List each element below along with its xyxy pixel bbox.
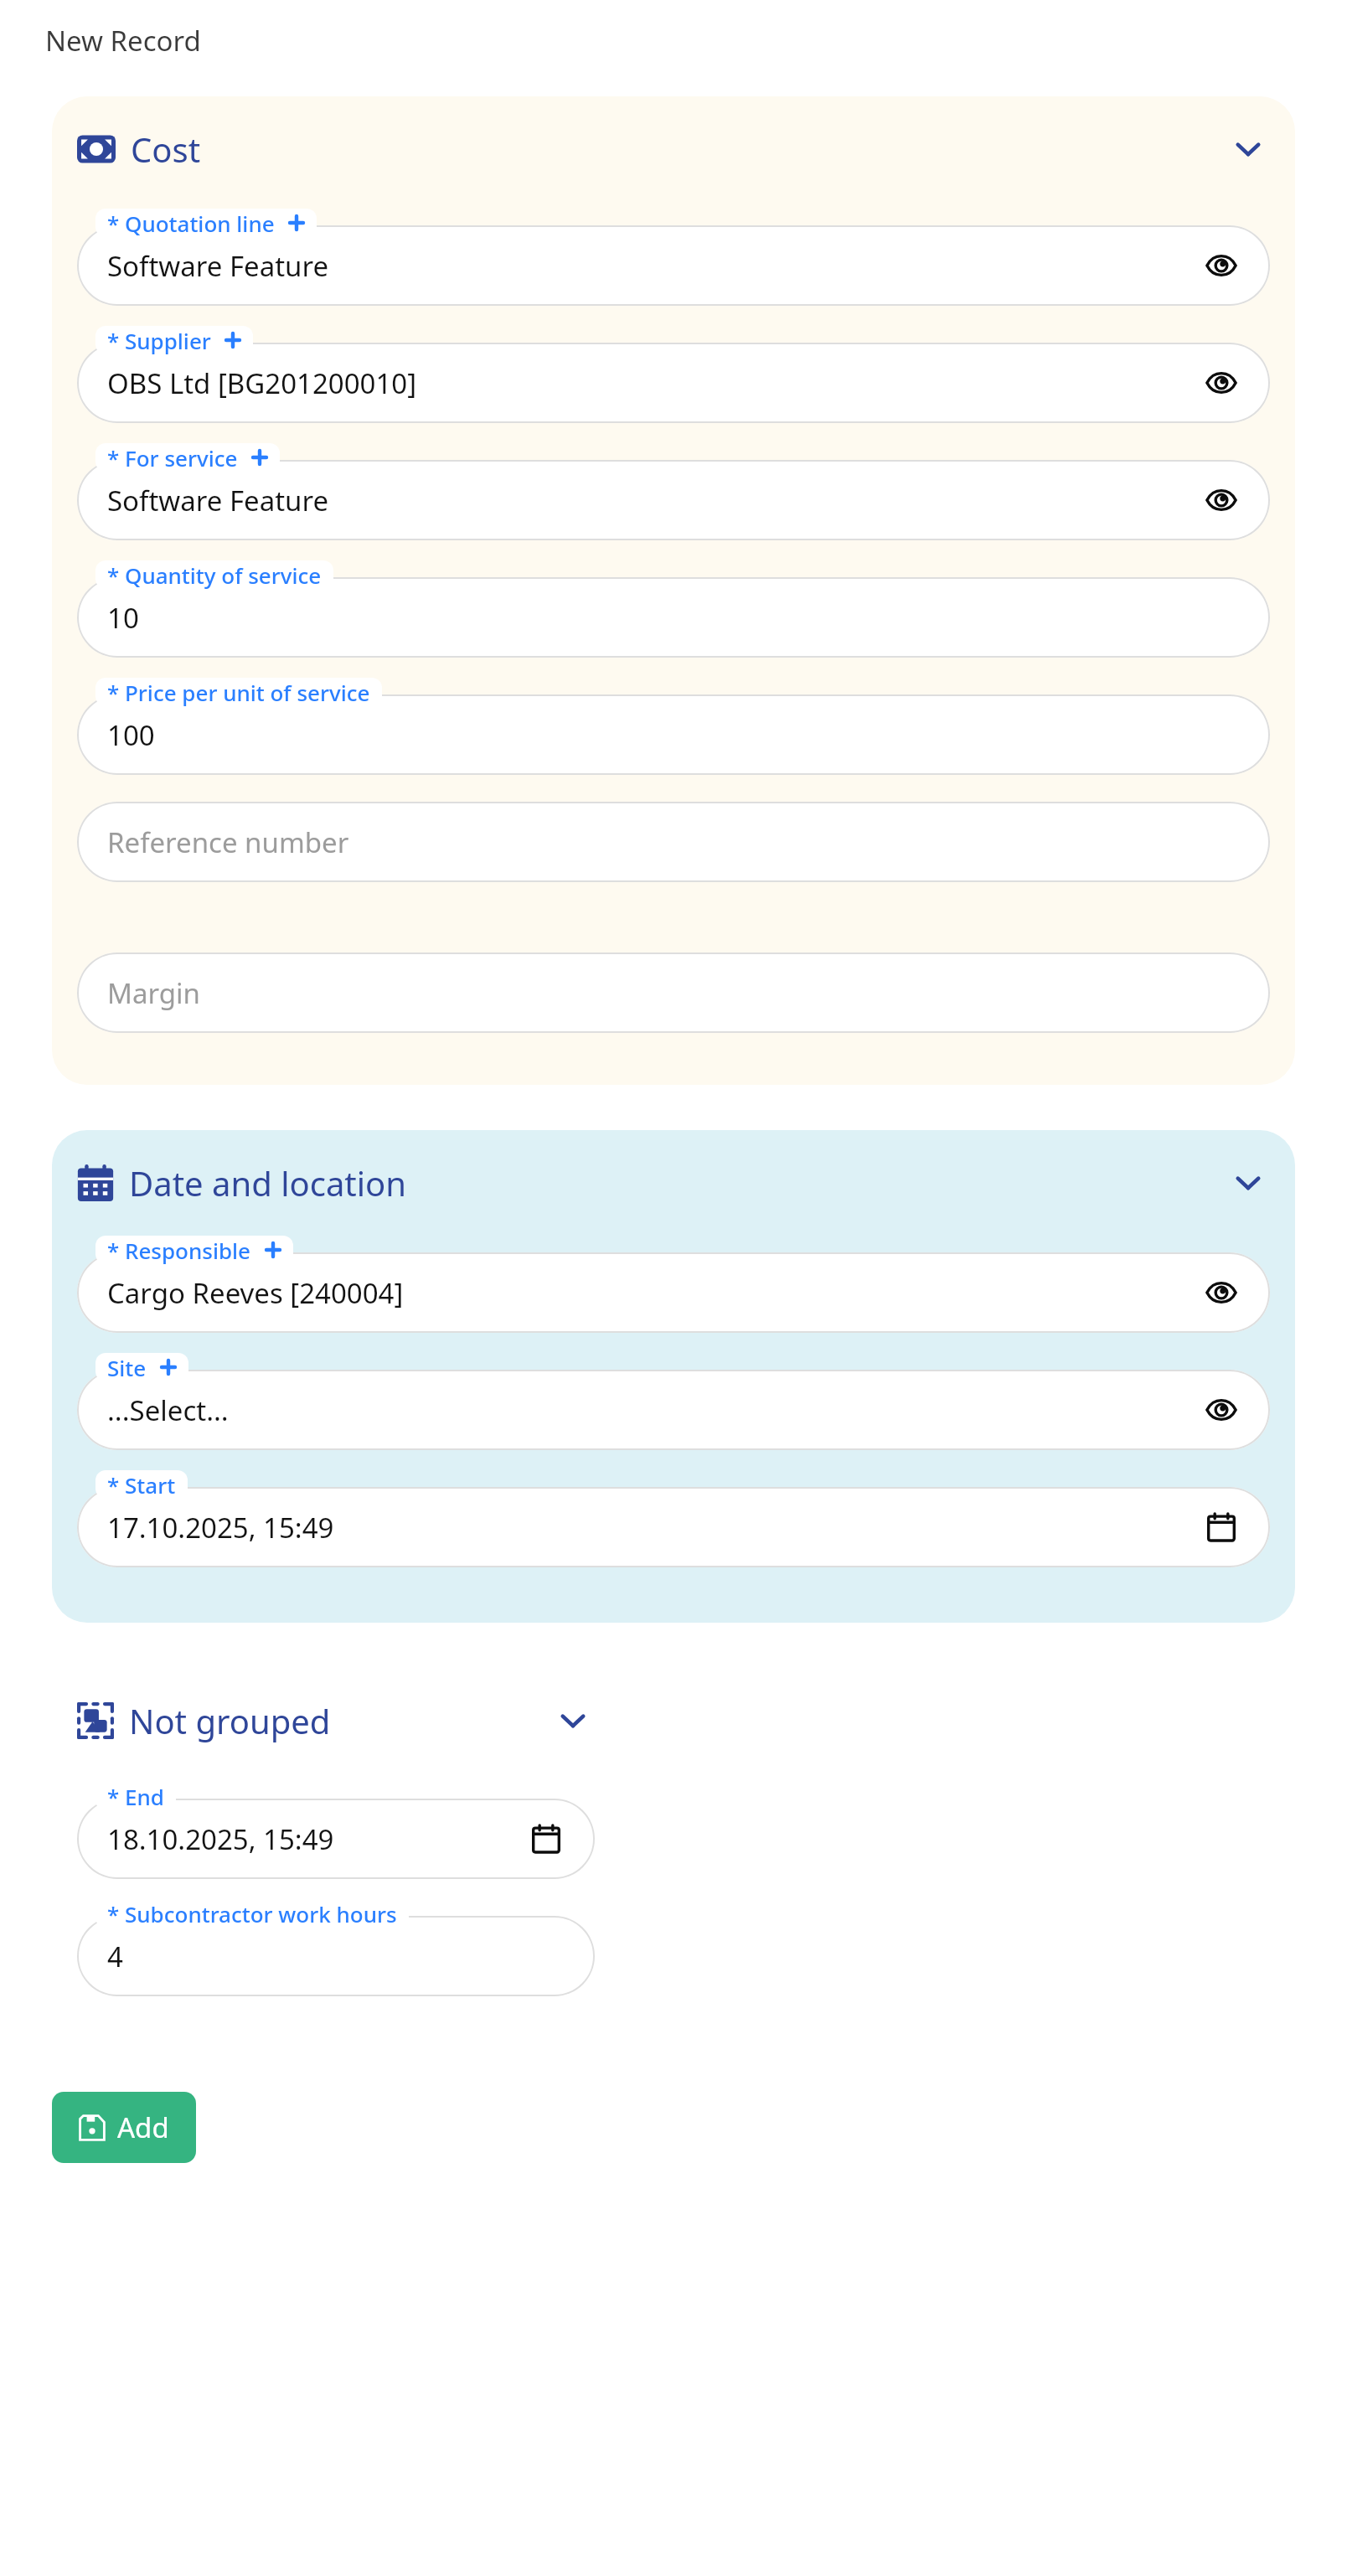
button[interactable]: 100	[77, 694, 1270, 775]
button[interactable]: 4	[77, 1916, 595, 1996]
staticText: Not grouped	[129, 1698, 331, 1743]
staticText: * Supplier	[107, 326, 211, 354]
staticText: 18.10.2025, 15:49	[107, 1820, 334, 1858]
staticText: Site	[107, 1353, 147, 1381]
staticText: Margin	[107, 974, 200, 1012]
button[interactable]: Pick date for End	[526, 1819, 566, 1859]
staticText: 100	[107, 716, 155, 754]
staticText: * Start	[107, 1470, 176, 1499]
button[interactable]: Cost	[77, 126, 1270, 172]
button[interactable]: Cargo Reeves [240004]	[77, 1252, 1270, 1333]
staticText: * Responsible	[107, 1236, 251, 1264]
staticText: Software Feature	[107, 247, 329, 285]
staticText: * Subcontractor work hours	[107, 1899, 397, 1928]
staticText: * Price per unit of service	[107, 678, 370, 706]
button[interactable]: View Quotation line	[1201, 245, 1241, 286]
staticText: 10	[107, 599, 139, 637]
staticText: * End	[107, 1782, 164, 1810]
button[interactable]: 18.10.2025, 15:49	[77, 1799, 595, 1879]
staticText: Add	[117, 2109, 169, 2146]
button[interactable]: View Responsible	[1201, 1273, 1241, 1313]
button[interactable]: View Supplier	[1201, 363, 1241, 403]
staticText: Reference number	[107, 823, 349, 861]
button[interactable]: Collapse Date and location	[1226, 1161, 1270, 1205]
button[interactable]: OBS Ltd [BG201200010]	[77, 343, 1270, 423]
staticText: Cost	[131, 126, 201, 172]
staticText: New Record	[45, 22, 201, 59]
staticText: 4	[107, 1938, 123, 1975]
button[interactable]: View Site	[1201, 1390, 1241, 1430]
staticText: Software Feature	[107, 482, 329, 519]
staticText: OBS Ltd [BG201200010]	[107, 364, 417, 402]
staticText: * For service	[107, 443, 238, 472]
button[interactable]: Collapse Cost	[1226, 127, 1270, 171]
button[interactable]: Add	[52, 2092, 196, 2163]
button[interactable]: Software Feature	[77, 225, 1270, 306]
staticText: * Quotation line	[107, 209, 275, 237]
button[interactable]: 10	[77, 577, 1270, 658]
button[interactable]: Collapse Not grouped	[551, 1699, 595, 1742]
button[interactable]: Date and location	[77, 1160, 1270, 1205]
button[interactable]: View For service	[1201, 480, 1241, 520]
staticText: ...Select...	[107, 1391, 229, 1429]
staticText: 17.10.2025, 15:49	[107, 1509, 334, 1546]
button[interactable]: ...Select...	[77, 1370, 1270, 1450]
button[interactable]: Not grouped	[77, 1698, 595, 1743]
staticText: Date and location	[129, 1160, 407, 1205]
button[interactable]: Pick date for Start	[1201, 1507, 1241, 1547]
staticText: Cargo Reeves [240004]	[107, 1274, 404, 1312]
button[interactable]: Software Feature	[77, 460, 1270, 540]
button[interactable]: 17.10.2025, 15:49	[77, 1487, 1270, 1567]
button[interactable]: Reference number	[77, 802, 1270, 882]
button[interactable]: Margin	[77, 952, 1270, 1033]
staticText: * Quantity of service	[107, 560, 322, 589]
